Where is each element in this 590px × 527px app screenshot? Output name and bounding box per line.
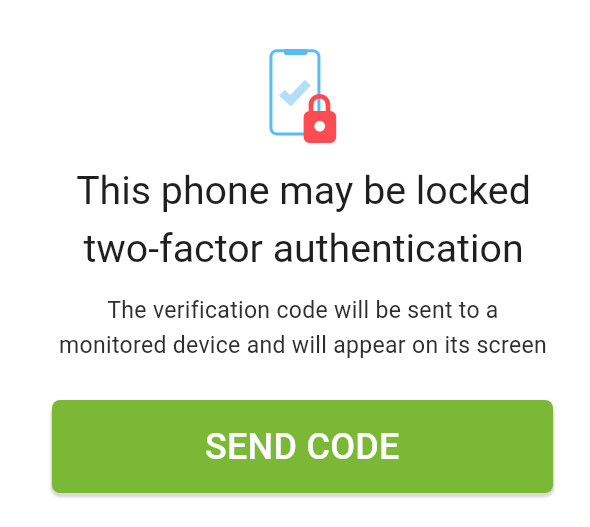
- staticText: SEND CODE: [205, 426, 400, 468]
- staticText: The verification code will be sent to a …: [59, 297, 547, 359]
- staticText: This phone may be locked two-factor auth…: [76, 168, 531, 271]
- other: Locked phone with two-factor verificatio…: [266, 46, 342, 146]
- button[interactable]: SEND CODE: [52, 400, 553, 493]
